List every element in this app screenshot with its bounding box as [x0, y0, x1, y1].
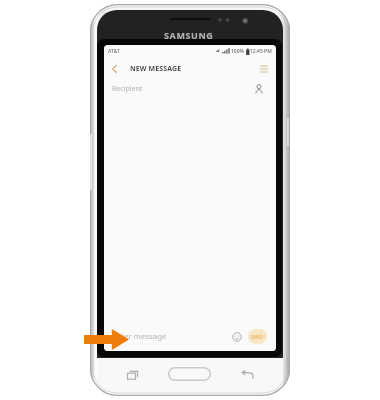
staticText: Recipient [112, 84, 143, 94]
button[interactable]: Back [238, 366, 256, 384]
staticText: NEW MESSAGE [130, 64, 182, 74]
button[interactable]: SEND [248, 329, 267, 344]
button[interactable]: Add recipient from contacts [252, 82, 266, 96]
button[interactable]: Navigate up [104, 58, 124, 79]
staticText: 12:45 PM [250, 48, 272, 55]
staticText: 100% [231, 48, 244, 55]
staticText: SAMSUNG [164, 29, 214, 41]
staticText: AT&T [108, 48, 120, 55]
button[interactable]: More options [254, 58, 274, 79]
button[interactable]: Recent apps [124, 366, 142, 384]
staticText: SEND [251, 334, 264, 340]
staticText: Enter message [112, 331, 167, 342]
button[interactable]: Insert emoji [230, 330, 243, 343]
button[interactable]: Home [168, 367, 211, 381]
